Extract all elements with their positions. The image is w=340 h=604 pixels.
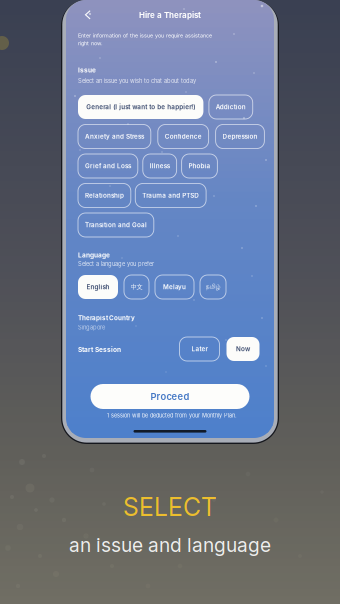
- button[interactable]: Depression: [216, 124, 264, 148]
- button[interactable]: General (I just want to be happier!): [78, 95, 203, 119]
- staticText: Anxiety and Stress: [85, 133, 144, 140]
- staticText: Trauma and PTSD: [142, 192, 199, 199]
- staticText: Therapist Country: [78, 314, 135, 322]
- staticText: Confidence: [165, 133, 202, 140]
- button[interactable]: Back: [79, 7, 97, 23]
- staticText: Later: [191, 345, 207, 353]
- button[interactable]: Addiction: [209, 95, 253, 119]
- button[interactable]: Grief and Loss: [78, 154, 138, 178]
- button[interactable]: 中文: [124, 275, 149, 299]
- button[interactable]: தமிழ்: [200, 275, 226, 299]
- button[interactable]: Later: [179, 337, 219, 361]
- button[interactable]: Now: [226, 337, 259, 361]
- staticText: an issue and language: [69, 533, 271, 557]
- button[interactable]: Transition and Goal: [78, 213, 154, 237]
- staticText: right now.: [78, 40, 103, 46]
- button[interactable]: Illness: [143, 154, 177, 178]
- button[interactable]: Proceed: [90, 384, 249, 409]
- staticText: Start Session: [78, 345, 121, 353]
- staticText: Relationship: [85, 192, 124, 199]
- staticText: Enter information of the issue you requi…: [78, 32, 212, 39]
- staticText: Language: [78, 251, 110, 259]
- staticText: Select an issue you wish to chat about t…: [78, 77, 196, 84]
- button[interactable]: English: [78, 275, 118, 299]
- staticText: Hire a Therapist: [139, 10, 201, 20]
- staticText: English: [86, 283, 109, 291]
- staticText: Singapore: [78, 324, 105, 331]
- staticText: Transition and Goal: [85, 221, 147, 229]
- staticText: Select a language you prefer: [78, 260, 154, 267]
- button[interactable]: Relationship: [78, 183, 131, 207]
- staticText: Issue: [78, 66, 96, 74]
- button[interactable]: Trauma and PTSD: [135, 183, 206, 207]
- staticText: General (I just want to be happier!): [86, 103, 195, 111]
- staticText: Depression: [222, 133, 257, 140]
- staticText: SELECT: [123, 492, 217, 522]
- staticText: Phobia: [188, 162, 210, 170]
- button[interactable]: Melayu: [155, 275, 194, 299]
- staticText: Now: [236, 345, 250, 353]
- staticText: 中文: [130, 283, 142, 291]
- staticText: Proceed: [150, 391, 189, 402]
- button[interactable]: Anxiety and Stress: [78, 124, 151, 148]
- staticText: Illness: [150, 162, 170, 170]
- staticText: Grief and Loss: [85, 162, 131, 170]
- staticText: தமிழ்: [205, 283, 220, 291]
- staticText: Melayu: [163, 283, 186, 291]
- staticText: 1 session will be deducted from your Mon…: [107, 412, 237, 419]
- button[interactable]: Confidence: [158, 124, 209, 148]
- button[interactable]: Phobia: [182, 154, 217, 178]
- staticText: Addiction: [216, 103, 246, 111]
